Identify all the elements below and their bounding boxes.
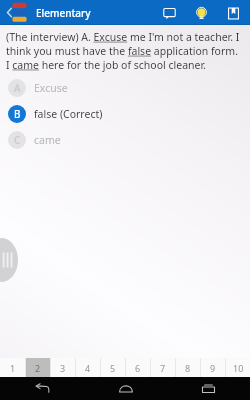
staticText: 9 bbox=[210, 362, 216, 374]
staticText: B bbox=[14, 107, 21, 121]
staticText: 7 bbox=[160, 362, 166, 374]
staticText: came bbox=[34, 133, 61, 147]
button[interactable]: 5 bbox=[101, 358, 125, 377]
button[interactable]: A bbox=[0, 75, 250, 101]
button[interactable]: Recent apps bbox=[167, 377, 250, 400]
button[interactable]: 8 bbox=[176, 358, 200, 377]
staticText: 10 bbox=[233, 362, 244, 374]
button[interactable]: Bookmark bbox=[223, 3, 243, 23]
staticText: 1 bbox=[10, 362, 16, 374]
staticText: A bbox=[14, 81, 21, 95]
button[interactable]: Drawer handle bbox=[0, 238, 18, 282]
button[interactable]: B bbox=[0, 101, 250, 127]
staticText: (The interview) A. Excuse me I'm not a t… bbox=[6, 30, 244, 72]
button[interactable]: 1 bbox=[0, 358, 25, 377]
staticText: C bbox=[14, 133, 21, 147]
staticText: Excuse bbox=[34, 81, 68, 95]
button[interactable]: 3 bbox=[51, 358, 75, 377]
staticText: 6 bbox=[135, 362, 141, 374]
staticText: false (Correct) bbox=[34, 107, 103, 121]
button[interactable]: 9 bbox=[201, 358, 225, 377]
button[interactable]: C bbox=[0, 127, 250, 153]
staticText: Elementary bbox=[36, 6, 91, 20]
button[interactable]: 6 bbox=[126, 358, 150, 377]
button[interactable]: Home bbox=[84, 377, 167, 400]
staticText: 2 bbox=[35, 362, 41, 374]
staticText: 4 bbox=[85, 362, 91, 374]
button[interactable]: 2 bbox=[26, 358, 50, 377]
staticText: 8 bbox=[185, 362, 191, 374]
staticText: 3 bbox=[60, 362, 66, 374]
staticText: 5 bbox=[110, 362, 116, 374]
button[interactable]: Back to English Grammar Tests bbox=[2, 1, 32, 24]
button[interactable]: Hint bbox=[191, 3, 211, 23]
button[interactable]: 10 bbox=[226, 358, 250, 377]
button[interactable]: 7 bbox=[151, 358, 175, 377]
button[interactable]: 4 bbox=[76, 358, 100, 377]
button[interactable]: Comments bbox=[159, 3, 179, 23]
button[interactable]: Back bbox=[0, 377, 84, 400]
